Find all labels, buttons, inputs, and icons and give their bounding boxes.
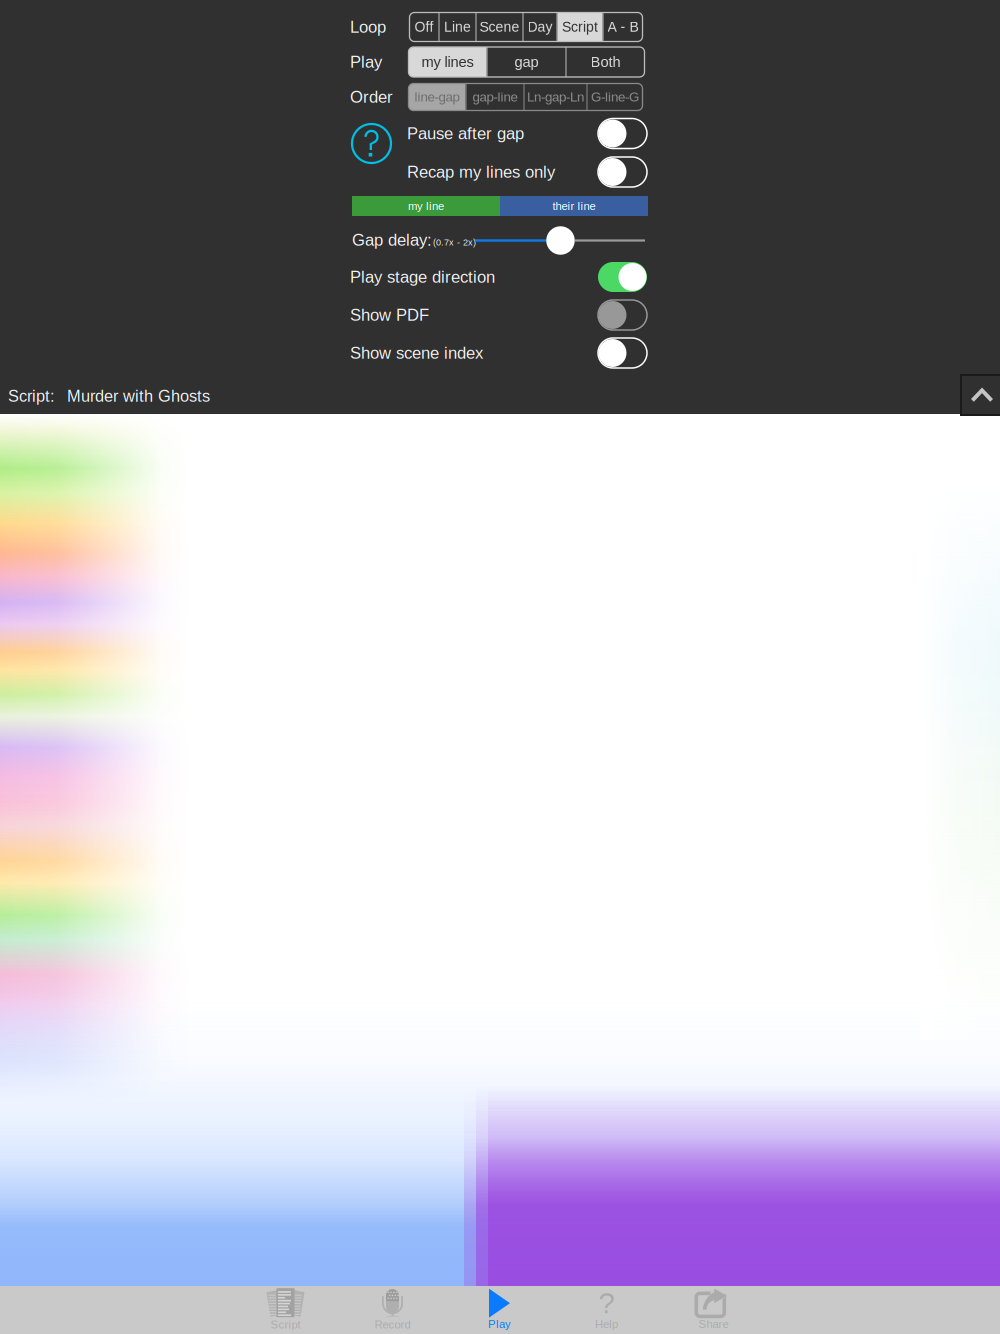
button[interactable]: line-gap [408, 83, 465, 110]
staticText: Play [488, 1318, 511, 1330]
staticText: Script [270, 1318, 300, 1331]
button[interactable]: Share [660, 1286, 767, 1334]
staticText: Show scene index [350, 344, 483, 362]
staticText: Recap my lines only [407, 163, 555, 181]
button[interactable]: A - B [603, 12, 642, 41]
button[interactable]: Record [339, 1286, 446, 1334]
button[interactable]: my line [352, 196, 500, 216]
button[interactable]: Show scene index [350, 336, 647, 370]
button[interactable]: Play [446, 1286, 553, 1334]
staticText: Loop [350, 18, 386, 36]
staticText: G-line-G [591, 90, 639, 104]
button[interactable]: Both [566, 47, 644, 77]
button[interactable]: Show PDF [350, 298, 647, 332]
button[interactable]: gap-line [466, 83, 523, 110]
staticText: their line [552, 200, 595, 212]
staticText: Gap delay: [352, 231, 432, 249]
staticText: Line [444, 19, 471, 35]
button[interactable]: my lines [408, 47, 486, 77]
button[interactable]: Recap my lines only [407, 155, 647, 189]
staticText: my line [408, 200, 444, 212]
staticText: Ln-gap-Ln [527, 90, 584, 104]
button[interactable]: Collapse panel [961, 375, 1000, 415]
staticText: Share [698, 1318, 728, 1330]
staticText: Play [350, 53, 382, 71]
staticText: Scene [479, 19, 519, 35]
staticText: Order [350, 88, 393, 106]
button[interactable]: Play stage direction [350, 260, 647, 294]
staticText: Record [374, 1318, 410, 1331]
button[interactable]: Scene [476, 12, 522, 41]
button[interactable]: Pause after gap [407, 116, 647, 150]
staticText: Murder with Ghosts [67, 387, 210, 405]
staticText: Script: [8, 387, 55, 405]
button[interactable]: ? [553, 1286, 660, 1334]
staticText: Help [595, 1318, 618, 1330]
button[interactable]: G-line-G [587, 83, 642, 110]
staticText: Day [527, 19, 552, 35]
button[interactable]: their line [500, 196, 648, 216]
staticText: Show PDF [350, 306, 429, 324]
staticText: Script [562, 19, 598, 35]
staticText: Pause after gap [407, 124, 524, 143]
button[interactable]: Line [439, 12, 475, 41]
staticText: Both [590, 54, 620, 70]
button[interactable]: Script [232, 1286, 339, 1334]
staticText: line-gap [414, 90, 459, 104]
button[interactable]: Day [523, 12, 556, 41]
button[interactable]: Off [409, 12, 438, 41]
button[interactable]: gap [487, 47, 565, 77]
staticText: Play stage direction [350, 268, 495, 286]
button[interactable]: Ln-gap-Ln [524, 83, 586, 110]
staticText: gap-line [472, 90, 517, 104]
staticText: (0.7x - 2x) [433, 237, 476, 247]
button[interactable]: Help [349, 121, 393, 165]
staticText: my lines [421, 54, 473, 70]
button[interactable]: Script [557, 12, 602, 41]
staticText: gap [514, 54, 538, 70]
staticText: Off [414, 19, 433, 35]
staticText: ? [598, 1287, 614, 1320]
staticText: A - B [607, 19, 638, 35]
